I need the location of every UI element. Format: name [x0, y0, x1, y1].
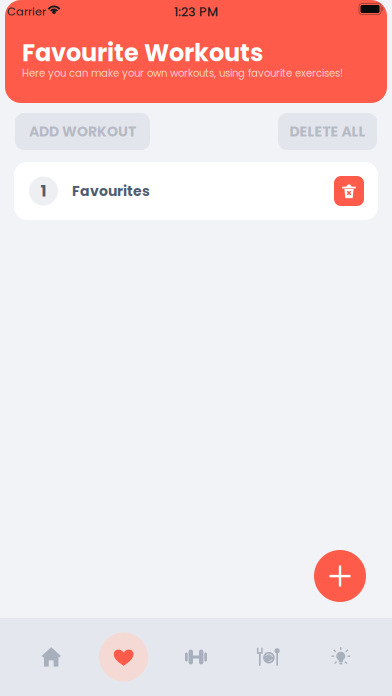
button[interactable]: Tips [305, 618, 377, 696]
button[interactable]: ADD WORKOUT [15, 113, 150, 150]
button[interactable]: Favourites [87, 618, 160, 696]
staticText: ADD WORKOUT [29, 122, 136, 141]
button[interactable]: 1 [14, 162, 378, 220]
staticText: Carrier [7, 3, 46, 19]
button[interactable]: Home [15, 618, 87, 696]
staticText: Favourite Workouts [22, 36, 263, 70]
button[interactable]: Nutrition [232, 618, 305, 696]
button[interactable]: Workouts [160, 618, 232, 696]
staticText: Here you can make your own workouts, usi… [22, 66, 343, 80]
staticText: 1:23 PM [174, 3, 218, 21]
button[interactable]: DELETE ALL [278, 113, 377, 150]
button[interactable]: Add workout [314, 550, 366, 602]
staticText: DELETE ALL [289, 122, 365, 141]
staticText: 1 [40, 180, 46, 202]
staticText: Favourites [72, 181, 150, 201]
